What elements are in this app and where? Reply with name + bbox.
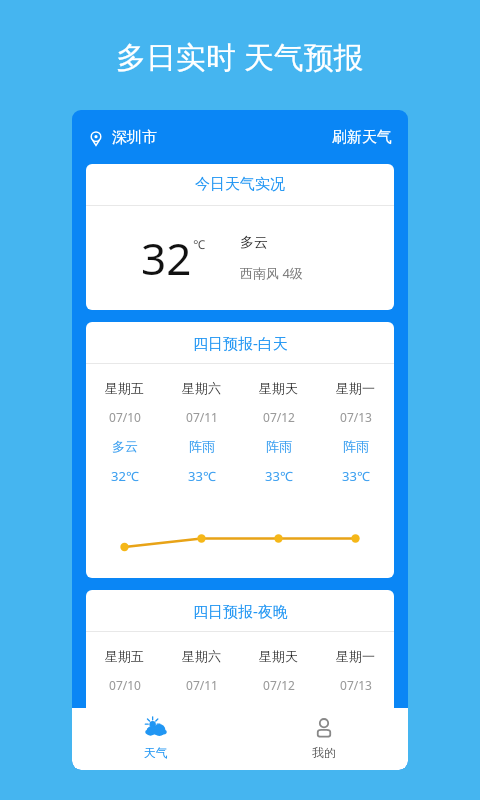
staticText: 四日预报-夜晚 [193,601,288,621]
staticText: 07/13 [340,409,372,425]
staticText: 阵雨 [343,438,369,454]
staticText: 32℃ [111,467,139,485]
staticText: 33℃ [265,467,293,485]
staticText: 多日实时 天气预报 [116,36,364,77]
staticText: ℃ [193,236,205,252]
button[interactable]: Weather [72,708,240,770]
staticText: 星期五 [105,380,144,396]
staticText: 星期天 [259,648,298,664]
staticText: 07/12 [263,409,295,425]
staticText: 星期五 [105,648,144,664]
staticText: 深圳市 [112,128,157,147]
staticText: 我的 [312,745,336,760]
staticText: 07/11 [186,409,218,425]
staticText: 阵雨 [189,438,215,454]
staticText: 07/12 [263,677,295,693]
button[interactable]: 四日预报-夜晚 [86,590,394,770]
staticText: 星期天 [259,380,298,396]
staticText: 07/10 [109,677,141,693]
button[interactable]: 四日预报-白天 [86,322,394,578]
staticText: 天气 [144,745,168,760]
staticText: 07/11 [186,677,218,693]
staticText: 西南风 4级 [240,264,303,282]
staticText: 星期一 [336,380,375,396]
staticText: 星期六 [182,380,221,396]
staticText: 星期一 [336,648,375,664]
other: Location [88,130,104,146]
button[interactable]: Location [86,124,159,151]
button[interactable]: Profile [240,708,408,770]
staticText: 多云 [112,438,138,454]
other: Profile [312,716,336,740]
staticText: 32 [141,228,192,288]
staticText: 刷新天气 [332,128,392,147]
staticText: 33℃ [342,467,370,485]
staticText: 07/13 [340,677,372,693]
staticText: 四日预报-白天 [193,333,288,353]
staticText: 星期六 [182,648,221,664]
staticText: 今日天气实况 [195,175,285,194]
other: Weather [144,716,168,740]
button[interactable]: 今日天气实况 [86,164,394,310]
staticText: 33℃ [188,467,216,485]
staticText: 多云 [240,234,268,252]
staticText: 07/10 [109,409,141,425]
button[interactable]: 刷新天气 [330,122,394,153]
staticText: 阵雨 [266,438,292,454]
